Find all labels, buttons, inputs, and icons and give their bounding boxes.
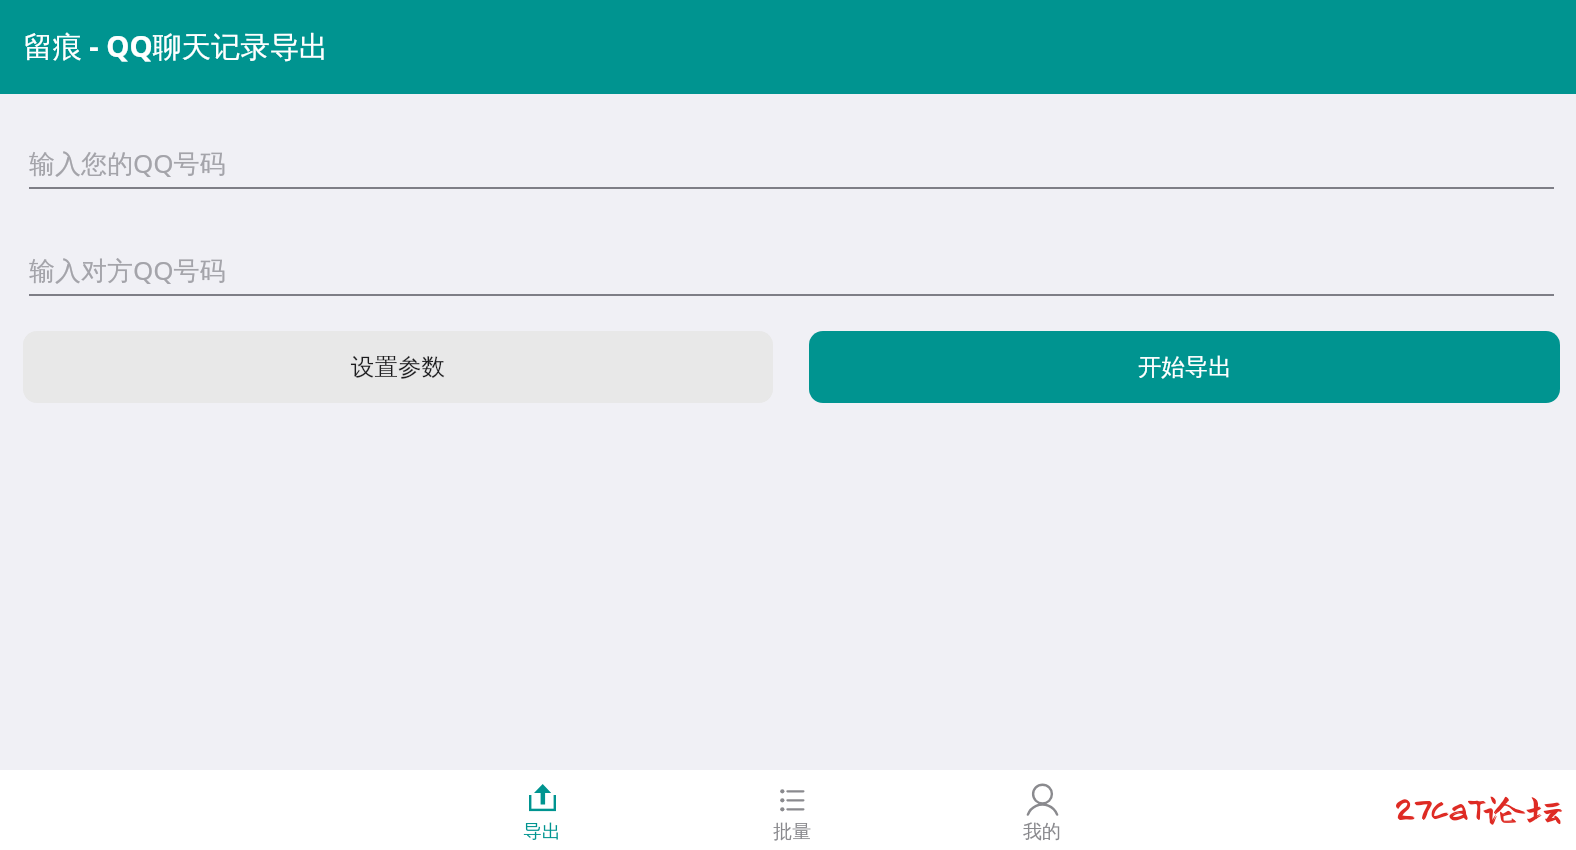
- staticText: 批量: [773, 820, 811, 844]
- staticText: 27CaT论坛: [1395, 788, 1565, 828]
- other: Batch: [780, 789, 804, 812]
- button[interactable]: Export: [417, 770, 667, 850]
- button[interactable]: Profile: [917, 770, 1167, 850]
- staticText: 留痕 - QQ聊天记录导出: [23, 26, 329, 66]
- button[interactable]: 开始导出: [809, 331, 1560, 403]
- button[interactable]: 输入对方QQ号码: [29, 252, 1554, 296]
- button[interactable]: 输入您的QQ号码: [29, 145, 1554, 189]
- button[interactable]: Batch: [667, 770, 917, 850]
- staticText: 开始导出: [1138, 352, 1232, 382]
- button[interactable]: 设置参数: [23, 331, 773, 403]
- staticText: 设置参数: [351, 352, 445, 382]
- staticText: 输入对方QQ号码: [29, 252, 226, 288]
- staticText: 27CaT论坛: [1394, 787, 1564, 827]
- staticText: 我的: [1023, 820, 1061, 844]
- staticText: 输入您的QQ号码: [29, 145, 226, 181]
- other: Profile: [1027, 784, 1058, 815]
- other: Export: [529, 784, 556, 811]
- staticText: 导出: [523, 820, 561, 844]
